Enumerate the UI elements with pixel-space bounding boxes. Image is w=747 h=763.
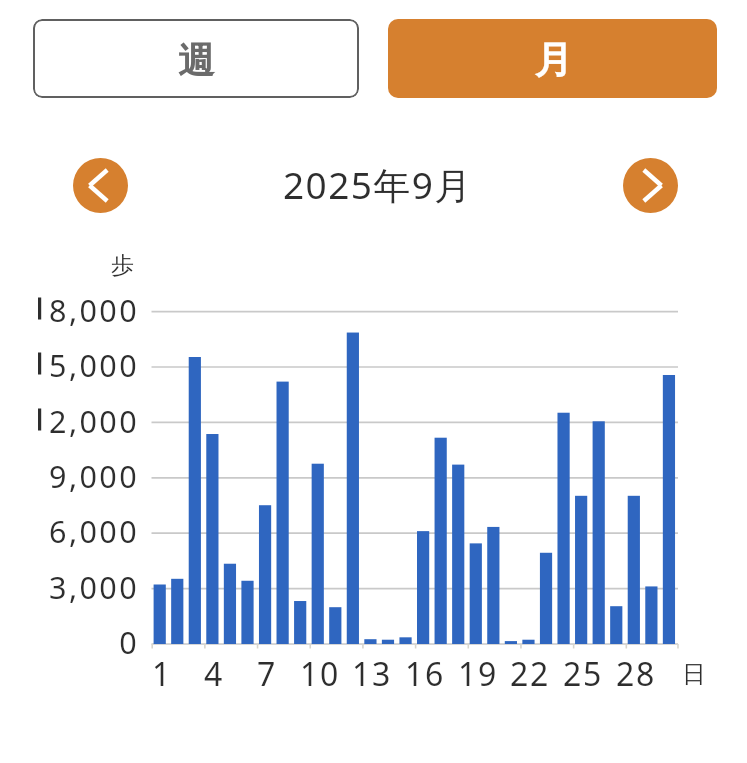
staticText: 16 bbox=[405, 652, 446, 692]
staticText: 6,000 bbox=[49, 510, 139, 550]
staticText: 4 bbox=[204, 652, 225, 692]
staticText: 日 bbox=[682, 659, 706, 689]
staticText: 1 bbox=[152, 652, 173, 692]
button[interactable]: 月 bbox=[388, 19, 717, 98]
staticText: 5,000 bbox=[49, 344, 139, 384]
staticText: 7 bbox=[257, 652, 278, 692]
staticText: 19 bbox=[458, 652, 499, 692]
staticText: 2025年9月 bbox=[283, 159, 473, 210]
staticText: 歩 bbox=[111, 251, 134, 280]
button[interactable]: 週 bbox=[33, 19, 359, 98]
staticText: 0 bbox=[119, 621, 139, 661]
staticText: 8,000 bbox=[49, 289, 139, 329]
button[interactable]: Next month bbox=[623, 158, 678, 213]
staticText: 13 bbox=[352, 652, 393, 692]
staticText: 28 bbox=[616, 652, 657, 692]
staticText: 週 bbox=[178, 38, 215, 84]
staticText: 月 bbox=[535, 37, 573, 84]
staticText: 10 bbox=[300, 652, 341, 692]
staticText: 25 bbox=[563, 652, 604, 692]
staticText: 2,000 bbox=[49, 400, 139, 440]
staticText: 22 bbox=[510, 652, 551, 692]
staticText: 3,000 bbox=[49, 566, 139, 606]
staticText: 9,000 bbox=[49, 455, 139, 495]
button[interactable]: Previous month bbox=[73, 158, 128, 213]
